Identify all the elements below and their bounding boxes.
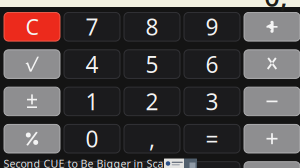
- button[interactable]: [184, 12, 240, 41]
- button[interactable]: Key: [184, 162, 240, 168]
- button[interactable]: [64, 87, 120, 116]
- button[interactable]: [124, 50, 180, 78]
- button[interactable]: [124, 87, 180, 116]
- button[interactable]: [124, 12, 180, 41]
- staticText: ,: [149, 124, 155, 154]
- staticText: 6: [205, 49, 218, 79]
- button[interactable]: Plus minus: [4, 87, 60, 116]
- button[interactable]: Key: [244, 162, 300, 168]
- staticText: 1: [85, 86, 98, 116]
- button[interactable]: Multiply: [244, 50, 300, 78]
- button[interactable]: [64, 50, 120, 78]
- button[interactable]: [64, 124, 120, 153]
- staticText: 2: [145, 86, 158, 116]
- staticText: 7: [85, 12, 98, 42]
- staticText: 3: [205, 86, 218, 116]
- button[interactable]: Divide: [244, 12, 300, 41]
- staticText: 4: [85, 49, 98, 79]
- button[interactable]: [184, 50, 240, 78]
- button[interactable]: Square root: [4, 50, 60, 78]
- button[interactable]: Article link preview: [164, 158, 197, 168]
- staticText: C: [25, 13, 38, 41]
- button[interactable]: Key: [64, 162, 120, 168]
- button[interactable]: [184, 87, 240, 116]
- button[interactable]: [64, 12, 120, 41]
- button[interactable]: Percent: [4, 124, 60, 153]
- staticText: 9: [205, 12, 218, 42]
- staticText: =: [205, 124, 218, 154]
- button[interactable]: [184, 124, 240, 153]
- staticText: 8: [145, 12, 158, 42]
- button[interactable]: Key: [4, 162, 60, 168]
- button[interactable]: Add: [244, 124, 300, 153]
- staticText: Second CUE to Be Bigger in Scale: [4, 156, 173, 168]
- staticText: 5: [145, 49, 158, 79]
- button[interactable]: Key: [124, 162, 180, 168]
- staticText: 0,: [264, 0, 288, 15]
- button[interactable]: Subtract: [244, 87, 300, 116]
- button[interactable]: [124, 124, 180, 153]
- staticText: 0: [85, 124, 98, 154]
- button[interactable]: Clear: [4, 12, 60, 41]
